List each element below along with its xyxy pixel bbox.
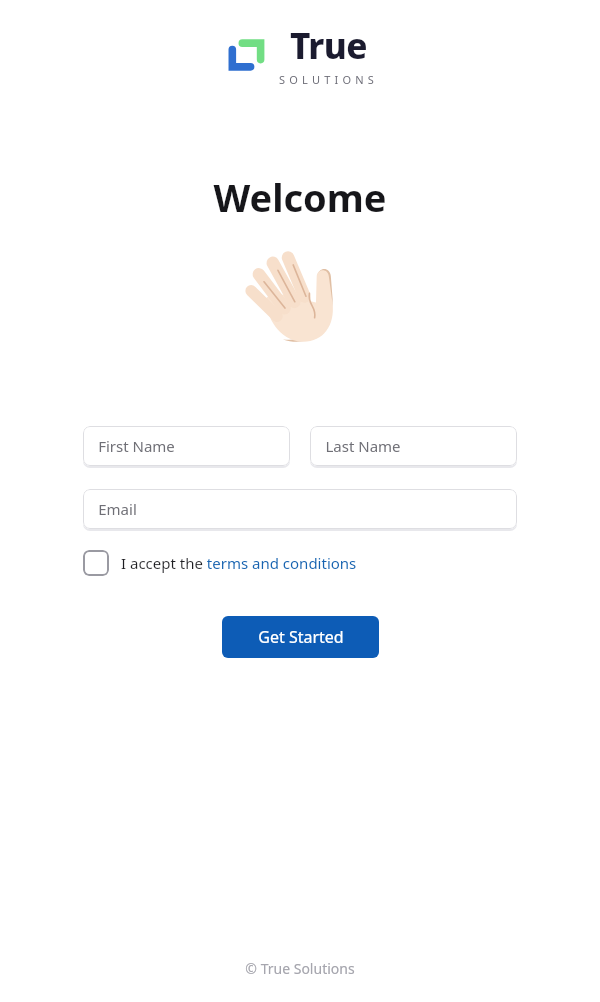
button[interactable]: Last Name [310, 426, 517, 466]
staticText: Welcome [213, 171, 387, 223]
staticText: True [290, 22, 367, 70]
other: Accept terms checkbox [83, 550, 109, 576]
staticText: I accept the terms and conditions [121, 553, 357, 573]
staticText: Get Started [258, 626, 344, 648]
button[interactable]: Accept terms checkbox [83, 550, 357, 576]
staticText: First Name [98, 436, 175, 456]
staticText: SOLUTIONS [279, 72, 378, 87]
button[interactable]: First Name [83, 426, 290, 466]
other: Waving hand [250, 245, 350, 349]
other: True Solutions logo [223, 32, 269, 78]
button[interactable]: True Solutions logo [223, 22, 378, 87]
staticText: Email [98, 499, 137, 519]
staticText: © True Solutions [245, 959, 355, 978]
button[interactable]: Get Started [222, 616, 379, 658]
button[interactable]: Email [83, 489, 517, 529]
staticText: Last Name [325, 436, 401, 456]
